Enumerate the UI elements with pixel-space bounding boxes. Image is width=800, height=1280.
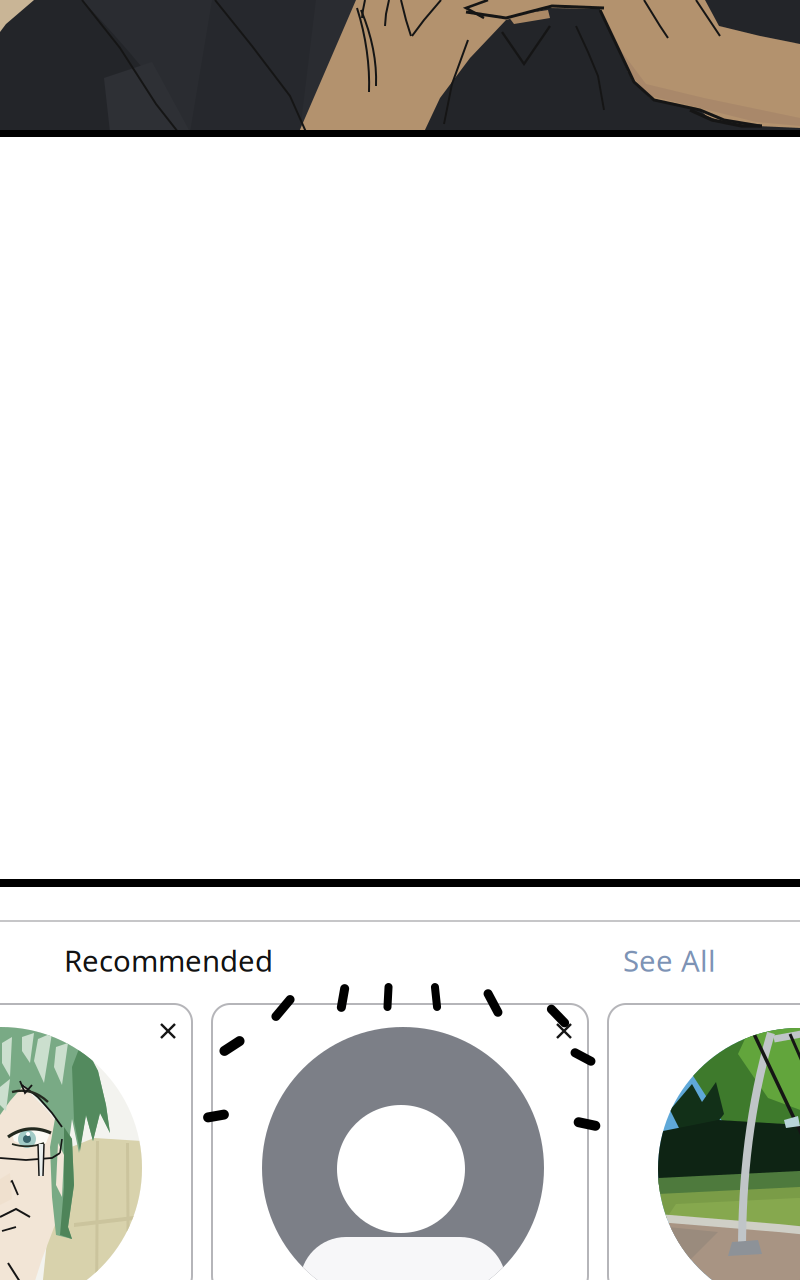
button[interactable]: Recommended xyxy=(60,933,277,988)
button[interactable]: See All xyxy=(617,933,722,988)
button[interactable]: Dismiss recommendation xyxy=(553,1020,575,1042)
button[interactable]: Dismiss recommendation xyxy=(157,1020,179,1042)
staticText: Recommended xyxy=(64,941,273,980)
staticText: See All xyxy=(623,941,716,980)
